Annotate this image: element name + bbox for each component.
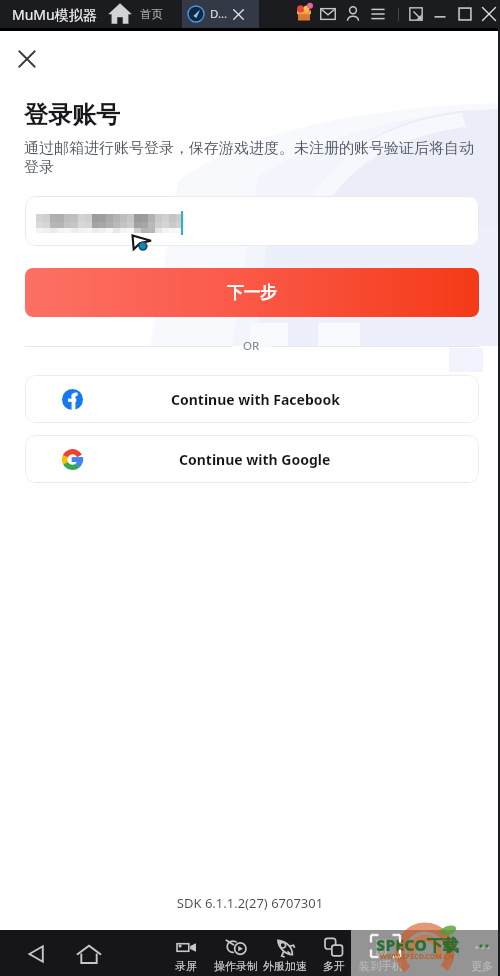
staticText: 更多 bbox=[471, 959, 493, 973]
staticText: 首页 bbox=[140, 7, 163, 21]
staticText: 录屏 bbox=[175, 959, 197, 973]
staticText: 操作录制 bbox=[214, 959, 258, 973]
staticText: Continue with Google bbox=[179, 450, 331, 469]
button[interactable]: Minimize bbox=[429, 3, 451, 25]
staticText: WWW.SPECO.COM.CN bbox=[380, 952, 454, 962]
button[interactable]: 录屏 bbox=[160, 938, 212, 973]
button[interactable]: Maximize bbox=[454, 3, 476, 25]
button[interactable]: Continue with Google bbox=[25, 435, 479, 483]
staticText: D... bbox=[210, 6, 228, 22]
staticText: SDK 6.1.1.2(27) 6707301 bbox=[0, 894, 500, 912]
button[interactable]: Home bbox=[74, 939, 104, 969]
staticText: 下一步 bbox=[227, 282, 277, 303]
staticText: OR bbox=[243, 338, 260, 354]
staticText: Continue with Facebook bbox=[171, 390, 340, 409]
staticText: 通过邮箱进行账号登录，保存游戏进度。未注册的账号验证后将自动登录 bbox=[24, 139, 478, 177]
button[interactable]: 操作录制 bbox=[210, 938, 262, 973]
button[interactable] bbox=[25, 196, 479, 246]
button[interactable]: Gifts bbox=[293, 3, 315, 25]
button[interactable]: 下一步 bbox=[25, 268, 479, 317]
button[interactable]: Account bbox=[342, 3, 364, 25]
button[interactable]: 装到手机 bbox=[355, 938, 407, 973]
button[interactable]: Close bbox=[12, 44, 42, 74]
staticText: 装到手机 bbox=[359, 959, 403, 973]
button[interactable]: Home bbox=[109, 3, 131, 25]
staticText: 登录账号 bbox=[24, 100, 120, 130]
button[interactable]: Close bbox=[478, 3, 500, 25]
button[interactable]: Messages bbox=[317, 3, 339, 25]
staticText: SPECO下载 bbox=[376, 934, 459, 956]
button[interactable]: Resize bbox=[405, 3, 427, 25]
button[interactable]: D... bbox=[182, 0, 259, 28]
staticText: 外服加速 bbox=[263, 959, 307, 973]
button[interactable]: 更多 bbox=[456, 938, 500, 973]
button[interactable]: 多开 bbox=[308, 938, 360, 973]
button[interactable]: Continue with Facebook bbox=[25, 375, 479, 423]
button[interactable]: 外服加速 bbox=[259, 938, 311, 973]
staticText: MuMu模拟器 bbox=[12, 5, 97, 24]
button[interactable]: Back bbox=[21, 939, 51, 969]
button[interactable]: Close tab bbox=[230, 6, 247, 23]
button[interactable]: Menu bbox=[367, 3, 389, 25]
staticText: 多开 bbox=[323, 959, 345, 973]
